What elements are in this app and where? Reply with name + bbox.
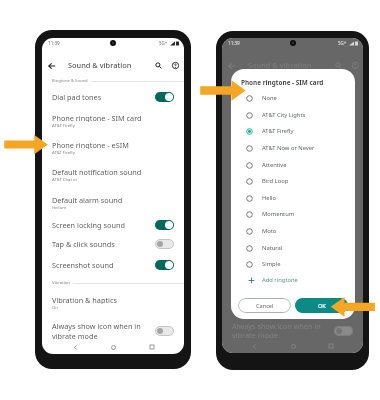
staticText: AT&T Firefly	[52, 123, 75, 129]
button[interactable]: Recents	[146, 341, 158, 353]
staticText: 5G+	[159, 40, 168, 46]
staticText: Ringtone & Sound	[52, 78, 88, 84]
staticText: Vibration & haptics	[52, 295, 117, 304]
button[interactable]: AT&T Now or Never	[231, 141, 355, 155]
button[interactable]: AT&T City Lights	[231, 108, 355, 122]
staticText: Simple	[262, 260, 281, 268]
button[interactable]: Default alarm sound	[42, 195, 184, 216]
button[interactable]: Hello	[231, 191, 355, 205]
button[interactable]: Tap & click sounds	[42, 237, 184, 251]
staticText: AT&T Chat er	[52, 177, 78, 183]
button[interactable]: Back	[225, 59, 238, 72]
staticText: Always show icon when in vibrate mode	[52, 321, 155, 341]
staticText: On	[52, 305, 58, 311]
staticText: Always show icon when in vibrate mode	[232, 321, 334, 340]
button[interactable]: Bird Loop	[231, 174, 355, 188]
staticText: Helium	[52, 205, 67, 211]
button[interactable]: Attentive	[231, 158, 355, 172]
staticText: Moto	[262, 227, 277, 235]
staticText: Phone ringtone - SIM card	[52, 113, 142, 122]
staticText: Cancel	[256, 302, 274, 310]
staticText: AT&T City Lights	[262, 111, 306, 119]
button[interactable]: Always show icon when in vibrate mode	[42, 321, 184, 341]
staticText: Sound & vibration	[248, 60, 312, 70]
button[interactable]: Natural	[231, 241, 355, 255]
button[interactable]: OK	[295, 298, 348, 313]
button[interactable]: Screenshot sound	[42, 258, 184, 272]
button[interactable]: Back	[248, 340, 260, 352]
button[interactable]: Search	[332, 59, 345, 72]
staticText: Screen locking sound	[52, 220, 155, 230]
button[interactable]: Vibration & haptics	[42, 295, 184, 316]
staticText: Bird Loop	[262, 177, 289, 185]
staticText: OK	[318, 302, 326, 310]
button[interactable]: Momentum	[231, 207, 355, 221]
staticText: Vibration	[52, 280, 70, 286]
button[interactable]: Screen locking sound	[42, 218, 184, 232]
button[interactable]: Default notification sound	[42, 167, 184, 188]
staticText: Hello	[262, 194, 277, 202]
staticText: Default alarm sound	[52, 195, 123, 204]
button[interactable]: Help	[169, 59, 182, 72]
staticText: Dial pad tones	[52, 92, 155, 102]
button[interactable]: AT&T Firefly	[231, 124, 355, 138]
button[interactable]: Moto	[231, 224, 355, 238]
button[interactable]: Cancel	[238, 298, 291, 313]
staticText: None	[262, 94, 277, 102]
staticText: Tap & click sounds	[52, 239, 155, 249]
staticText: Phone ringtone - eSIM	[52, 140, 129, 149]
button[interactable]: Phone ringtone - eSIM	[42, 140, 184, 161]
staticText: Add ringtone	[262, 276, 298, 284]
staticText: Natural	[262, 244, 283, 252]
button[interactable]: Back	[69, 341, 81, 353]
button[interactable]: Home	[107, 341, 119, 353]
staticText: Phone ringtone - SIM card	[241, 78, 324, 87]
button[interactable]: Phone ringtone - SIM card	[42, 113, 184, 134]
staticText: Sound & vibration	[68, 60, 132, 70]
staticText: Momentum	[262, 210, 295, 218]
staticText: Screenshot sound	[52, 260, 155, 270]
button[interactable]: Search	[152, 59, 165, 72]
staticText: Default notification sound	[52, 167, 142, 176]
button[interactable]: Dial pad tones	[42, 90, 184, 104]
button[interactable]: Recents	[325, 340, 337, 352]
button[interactable]: Help	[349, 59, 362, 72]
staticText: Attentive	[262, 161, 287, 169]
staticText: AT&T Now or Never	[262, 144, 315, 152]
button[interactable]: Add ringtone	[231, 273, 355, 287]
button[interactable]: Simple	[231, 257, 355, 271]
staticText: 11:39	[228, 40, 240, 46]
staticText: AT&T Firefly	[52, 150, 75, 156]
button[interactable]: Back	[45, 59, 58, 72]
button[interactable]: Home	[287, 340, 299, 352]
staticText: 5G+	[338, 40, 347, 46]
staticText: 11:39	[48, 40, 60, 46]
staticText: AT&T Firefly	[262, 127, 294, 135]
button[interactable]: None	[231, 91, 355, 105]
